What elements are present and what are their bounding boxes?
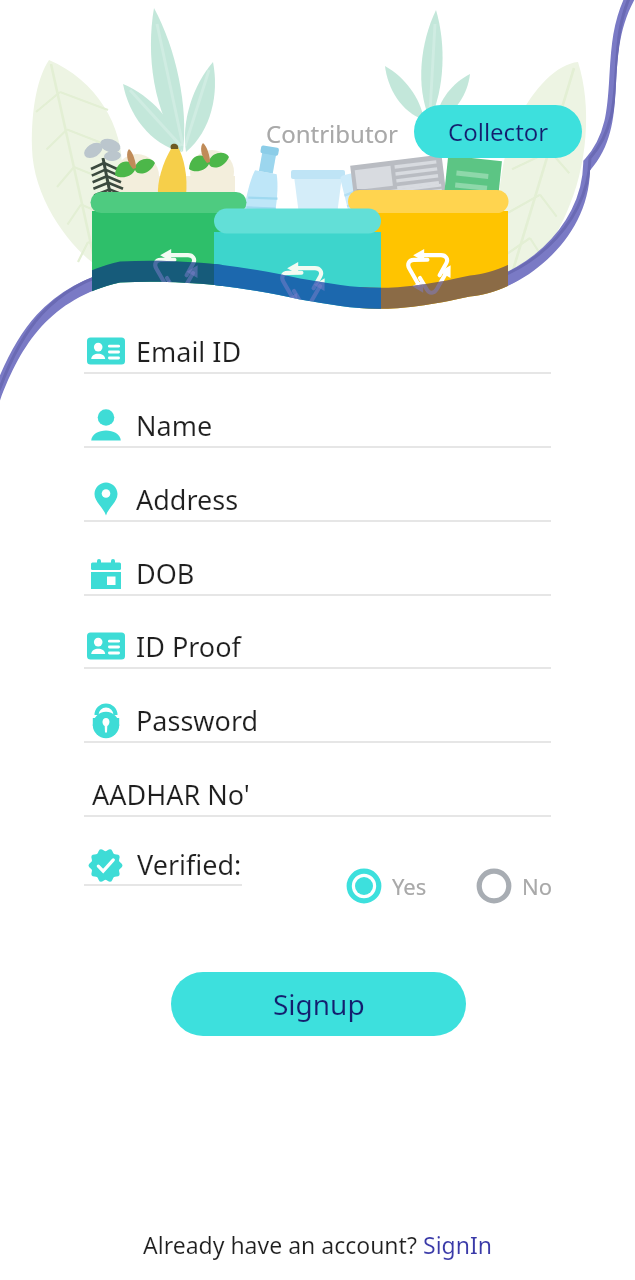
- button[interactable]: [84, 844, 244, 886]
- button[interactable]: Signup: [171, 972, 466, 1036]
- staticText: DOB: [136, 555, 195, 592]
- button[interactable]: [84, 462, 551, 522]
- staticText: AADHAR No': [92, 776, 250, 813]
- button[interactable]: [84, 536, 551, 596]
- button[interactable]: Contributor: [262, 117, 402, 150]
- button[interactable]: Yes: [346, 866, 427, 906]
- button[interactable]: [84, 683, 551, 743]
- button[interactable]: [84, 757, 551, 817]
- staticText: SignIn: [423, 1229, 492, 1260]
- staticText: Password: [136, 702, 259, 739]
- button[interactable]: [84, 388, 551, 448]
- staticText: Email ID: [136, 333, 242, 370]
- button[interactable]: Already have an account?: [143, 1229, 492, 1260]
- button[interactable]: [84, 609, 551, 669]
- staticText: Address: [136, 481, 239, 518]
- staticText: ID Proof: [136, 628, 241, 665]
- button[interactable]: [84, 314, 551, 374]
- button[interactable]: No: [476, 866, 553, 906]
- button[interactable]: Collector: [414, 105, 582, 158]
- staticText: Collector: [448, 115, 549, 148]
- staticText: No: [522, 871, 553, 901]
- staticText: Verified:: [137, 846, 242, 883]
- staticText: Signup: [273, 985, 365, 1023]
- staticText: Contributor: [266, 117, 398, 150]
- staticText: Already have an account?: [143, 1229, 423, 1260]
- staticText: Name: [136, 407, 213, 444]
- staticText: Yes: [392, 871, 427, 901]
